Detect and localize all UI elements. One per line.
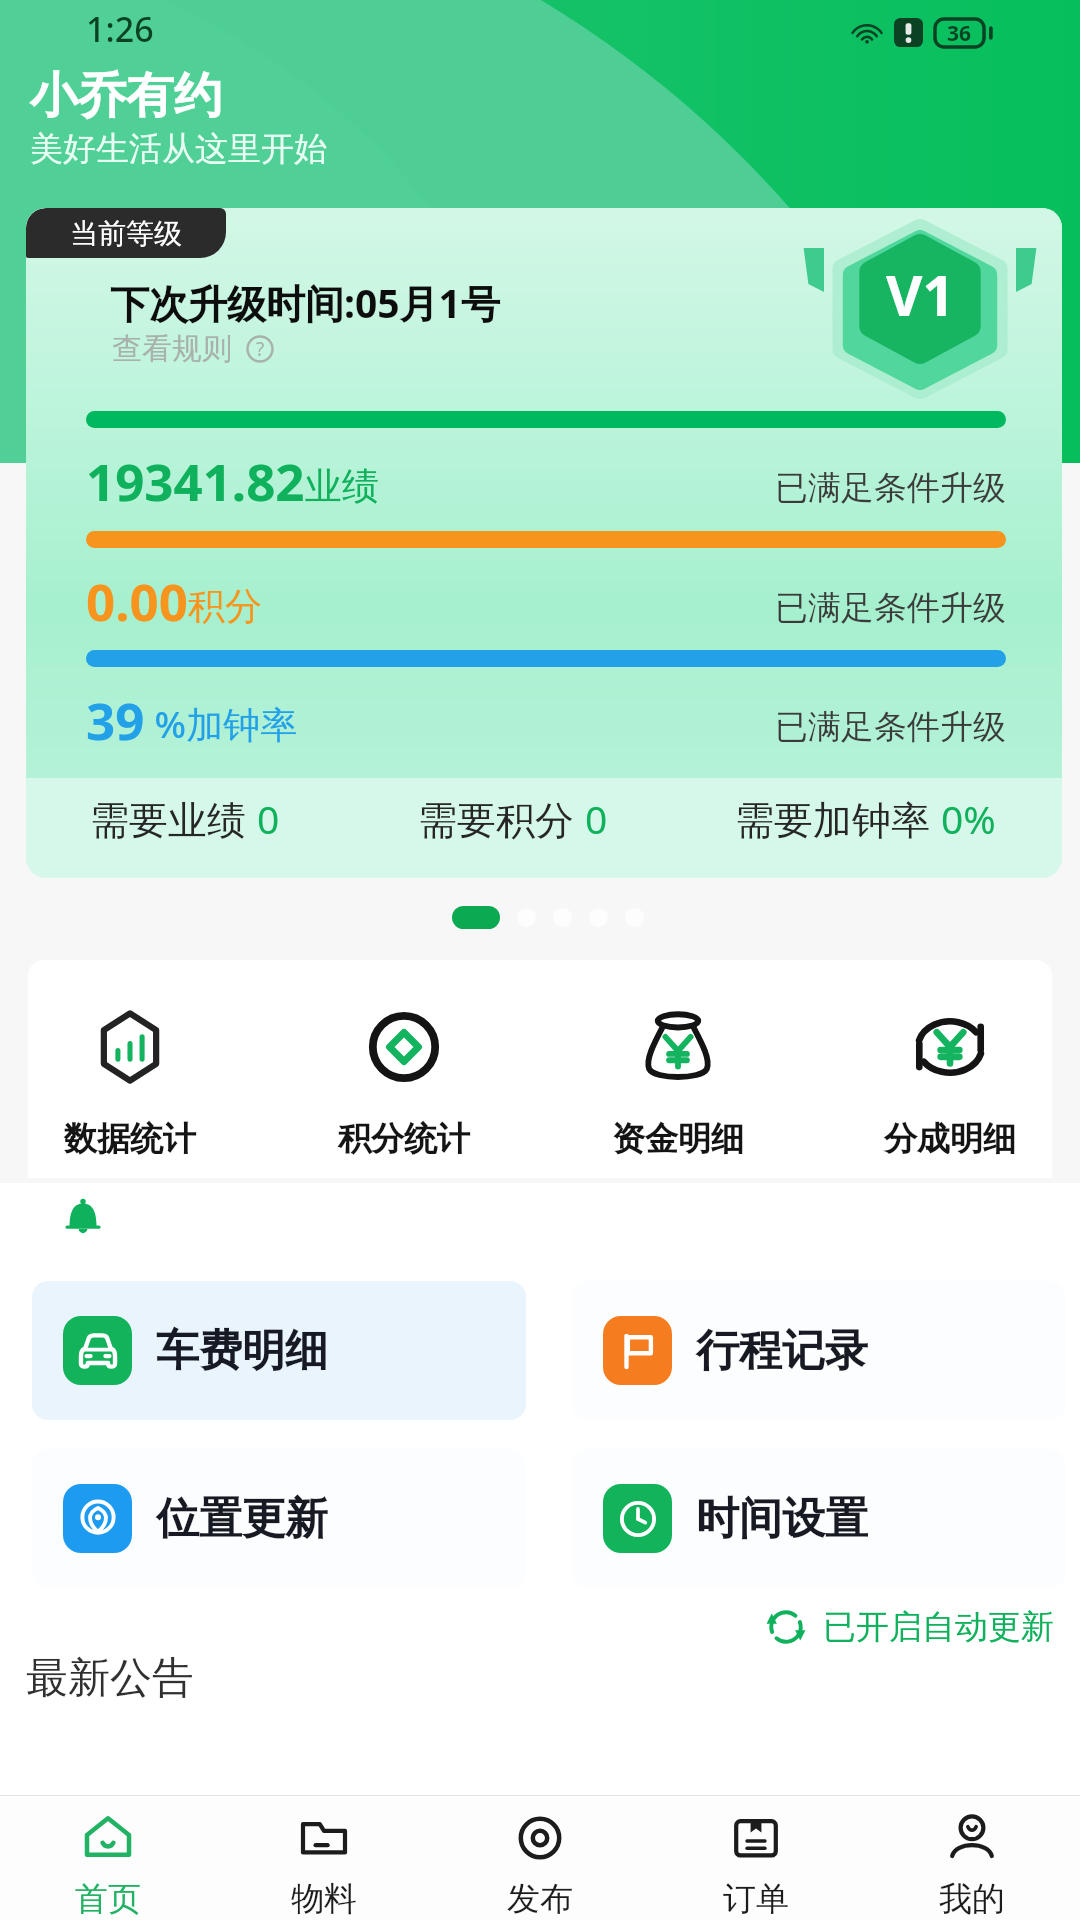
staticText: 物料 — [291, 1878, 357, 1920]
staticText: 0.00 — [86, 566, 188, 635]
button[interactable]: 查看规则 — [112, 330, 274, 368]
staticText: 39 — [86, 685, 145, 754]
staticText: 行程记录 — [696, 1324, 868, 1378]
button[interactable]: 积分统计 — [304, 1008, 504, 1160]
staticText: 已满足条件升级 — [775, 706, 1006, 748]
staticText: 1:26 — [86, 6, 154, 52]
staticText: 首页 — [75, 1878, 141, 1920]
staticText: 订单 — [723, 1878, 789, 1920]
staticText: 下次升级时间:05月1号 — [110, 276, 500, 329]
staticText: 已满足条件升级 — [775, 467, 1006, 509]
staticText: 当前等级 — [70, 216, 182, 251]
button[interactable]: 订单 — [648, 1808, 864, 1920]
staticText: 积分 — [188, 583, 262, 630]
staticText: 已满足条件升级 — [775, 587, 1006, 629]
staticText: 需要业绩 — [90, 792, 257, 845]
button[interactable]: 我的 — [864, 1808, 1080, 1920]
staticText: 0% — [941, 792, 996, 845]
staticText: 小乔有约 — [30, 66, 222, 126]
staticText: 分成明细 — [884, 1118, 1016, 1160]
staticText: 19341.82 — [86, 446, 305, 515]
staticText: 查看规则 — [112, 330, 232, 368]
staticText: 时间设置 — [696, 1492, 868, 1546]
staticText: 数据统计 — [64, 1118, 196, 1160]
button[interactable]: 发布 — [432, 1808, 648, 1920]
staticText: 需要积分 — [418, 792, 585, 845]
staticText: 我的 — [939, 1878, 1005, 1920]
staticText: V1 — [886, 256, 955, 332]
staticText: 发布 — [507, 1878, 573, 1920]
button[interactable]: V1 — [26, 208, 1062, 878]
button[interactable]: 资金明细 — [578, 1008, 778, 1160]
staticText: 36 — [947, 19, 972, 47]
button[interactable]: 行程记录 — [572, 1281, 1066, 1420]
button[interactable]: 分成明细 — [850, 1008, 1050, 1160]
staticText: 积分统计 — [338, 1118, 470, 1160]
staticText: 0 — [257, 792, 280, 845]
button[interactable]: 首页 — [0, 1808, 216, 1920]
staticText: 业绩 — [305, 463, 379, 510]
staticText: 车费明细 — [156, 1324, 328, 1378]
button[interactable]: 位置更新 — [32, 1449, 526, 1588]
staticText: 最新公告 — [26, 1652, 194, 1705]
staticText: 位置更新 — [156, 1492, 328, 1546]
staticText: ? — [256, 336, 265, 362]
button[interactable]: Notifications — [58, 1194, 108, 1244]
staticText: 0 — [585, 792, 608, 845]
button[interactable]: 车费明细 — [32, 1281, 526, 1420]
staticText: 美好生活从这里开始 — [30, 128, 327, 170]
button[interactable]: 时间设置 — [572, 1449, 1066, 1588]
staticText: 需要加钟率 — [735, 792, 941, 845]
button[interactable]: 物料 — [216, 1808, 432, 1920]
button[interactable]: 已开启自动更新 — [763, 1604, 1054, 1650]
staticText: %加钟率 — [145, 698, 298, 749]
staticText: 已开启自动更新 — [823, 1606, 1054, 1648]
staticText: 资金明细 — [612, 1118, 744, 1160]
button[interactable]: 数据统计 — [30, 1008, 230, 1160]
